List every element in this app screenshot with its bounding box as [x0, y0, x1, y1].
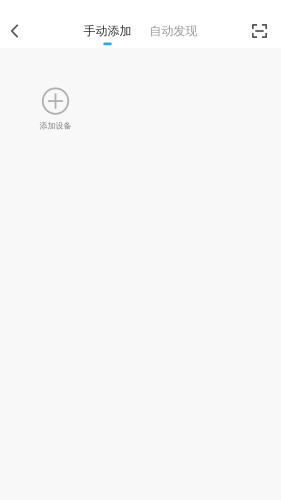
button[interactable]: 返回 — [0, 9, 34, 53]
button[interactable]: 自动发现 — [149, 24, 197, 45]
staticText: 自动发现 — [149, 24, 197, 38]
button[interactable]: 添加设备 — [22, 86, 88, 132]
staticText: 手动添加 — [83, 24, 131, 38]
button[interactable]: 手动添加 — [83, 24, 131, 45]
button[interactable]: 扫一扫 — [239, 9, 279, 53]
staticText: 添加设备 — [39, 121, 71, 131]
